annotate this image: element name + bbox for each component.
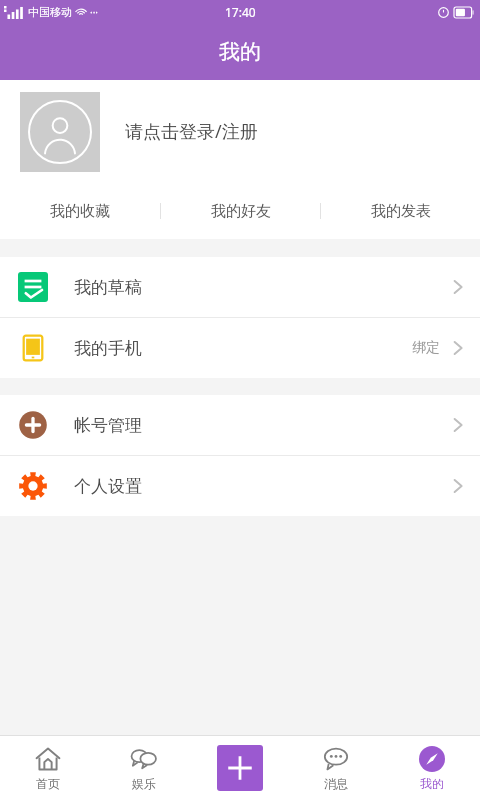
button[interactable]: 我的好友 xyxy=(161,183,320,239)
staticText: 首页 xyxy=(36,776,60,791)
staticText: 中国移动 xyxy=(28,5,72,19)
staticText: 娱乐 xyxy=(132,776,156,791)
staticText: 17:40 xyxy=(225,4,256,20)
button[interactable]: 我的发表 xyxy=(321,183,480,239)
button[interactable]: 首页 xyxy=(0,736,96,800)
button[interactable]: 请点击登录/注册 xyxy=(0,80,480,183)
staticText: 请点击登录/注册 xyxy=(125,119,258,144)
button[interactable]: 帐号管理 xyxy=(0,395,480,455)
staticText: 我的发表 xyxy=(371,202,431,221)
staticText: 我的 xyxy=(219,39,261,65)
button[interactable]: 我的手机 xyxy=(0,318,480,378)
button[interactable]: 我的收藏 xyxy=(0,183,160,239)
button[interactable]: 娱乐 xyxy=(96,736,192,800)
staticText: ··· xyxy=(90,5,99,19)
button[interactable]: 我的草稿 xyxy=(0,257,480,317)
staticText: 我的 xyxy=(420,776,444,791)
button[interactable]: 我的 xyxy=(384,736,480,800)
staticText: 我的好友 xyxy=(211,202,271,221)
staticText: 我的收藏 xyxy=(50,202,110,221)
button[interactable]: 消息 xyxy=(288,736,384,800)
button[interactable]: Create post xyxy=(192,736,288,800)
button[interactable]: 个人设置 xyxy=(0,456,480,516)
staticText: 帐号管理 xyxy=(74,415,142,436)
staticText: 个人设置 xyxy=(74,476,142,497)
staticText: 我的手机 xyxy=(74,338,142,359)
staticText: 绑定 xyxy=(412,339,440,357)
staticText: 消息 xyxy=(324,776,348,791)
staticText: 我的草稿 xyxy=(74,277,142,298)
